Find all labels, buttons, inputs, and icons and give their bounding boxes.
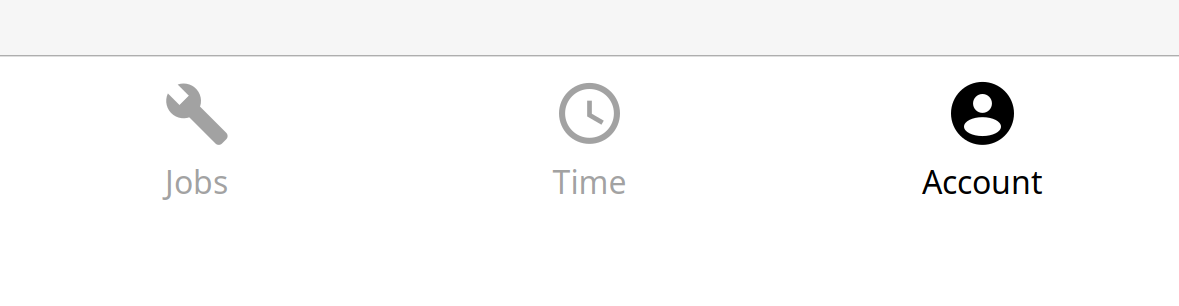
staticText: Jobs [165, 160, 228, 203]
staticText: Time [552, 160, 626, 203]
button[interactable]: Jobs [0, 56, 393, 223]
button[interactable]: Time [393, 56, 786, 223]
staticText: Account [922, 160, 1043, 203]
button[interactable]: Account [786, 56, 1179, 223]
